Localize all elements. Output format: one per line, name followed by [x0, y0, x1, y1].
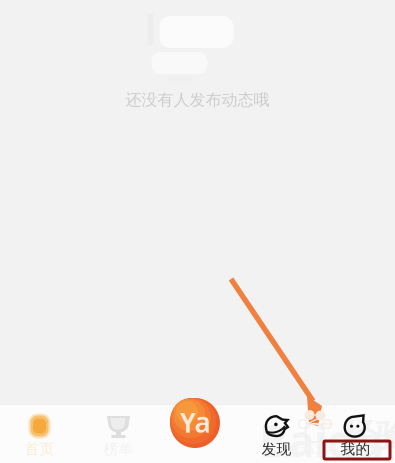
button[interactable]: 我的 — [316, 404, 395, 463]
button[interactable]: 首页 — [0, 404, 79, 463]
staticText: 首页 — [24, 440, 54, 458]
staticText: 经验 — [344, 416, 395, 455]
staticText: 榜单 — [103, 440, 133, 458]
staticText: 发现 — [261, 440, 291, 458]
button[interactable]: 发布 — [170, 398, 220, 448]
staticText: jingyan.baidu.com — [270, 440, 382, 458]
staticText: Baidu — [259, 411, 384, 463]
button[interactable]: 发现 — [237, 404, 316, 463]
button[interactable]: 榜单 — [79, 404, 158, 463]
staticText: Ya — [179, 403, 210, 441]
staticText: 我的 — [340, 440, 370, 458]
staticText: 还没有人发布动态哦 — [125, 90, 269, 110]
